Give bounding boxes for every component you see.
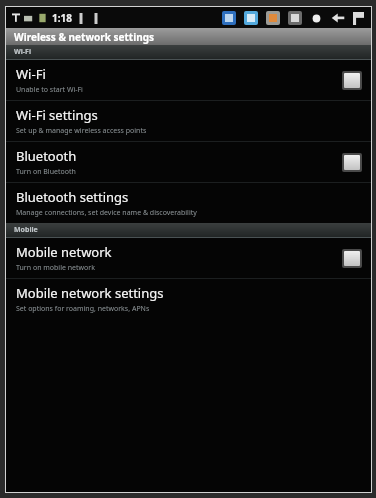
other: Notification (244, 11, 258, 25)
staticText: Wireless & network settings (14, 30, 154, 44)
staticText: Wi-Fi (16, 65, 46, 83)
other: Notification (222, 11, 236, 25)
staticText: Unable to start Wi-Fi (16, 85, 83, 95)
staticText: Turn on Bluetooth (16, 167, 76, 177)
staticText: Turn on mobile network (16, 263, 95, 273)
button[interactable]: Wi-Fi (6, 60, 371, 100)
staticText: Mobile (14, 225, 38, 235)
button[interactable]: Wi-Fi settings (6, 101, 371, 141)
button[interactable]: Mobile network settings (6, 279, 371, 319)
staticText: Manage connections, set device name & di… (16, 208, 197, 218)
staticText: Wi-Fi (14, 47, 32, 57)
staticText: 1:18 (52, 11, 72, 25)
staticText: Bluetooth settings (16, 188, 129, 206)
other: Status (310, 12, 323, 25)
staticText: Wi-Fi settings (16, 106, 98, 124)
staticText: Set options for roaming, networks, APNs (16, 304, 150, 314)
other: Menu (353, 12, 364, 25)
other: Back (331, 12, 345, 24)
other: Notification (288, 11, 302, 25)
button[interactable]: Mobile network (6, 238, 371, 278)
staticText: Bluetooth (16, 147, 77, 165)
staticText: Mobile network (16, 243, 112, 261)
staticText: Mobile network settings (16, 284, 164, 302)
button[interactable]: Bluetooth (6, 142, 371, 182)
other: Notification (266, 11, 280, 25)
button[interactable]: Bluetooth settings (6, 183, 371, 223)
staticText: Set up & manage wireless access points (16, 126, 147, 136)
